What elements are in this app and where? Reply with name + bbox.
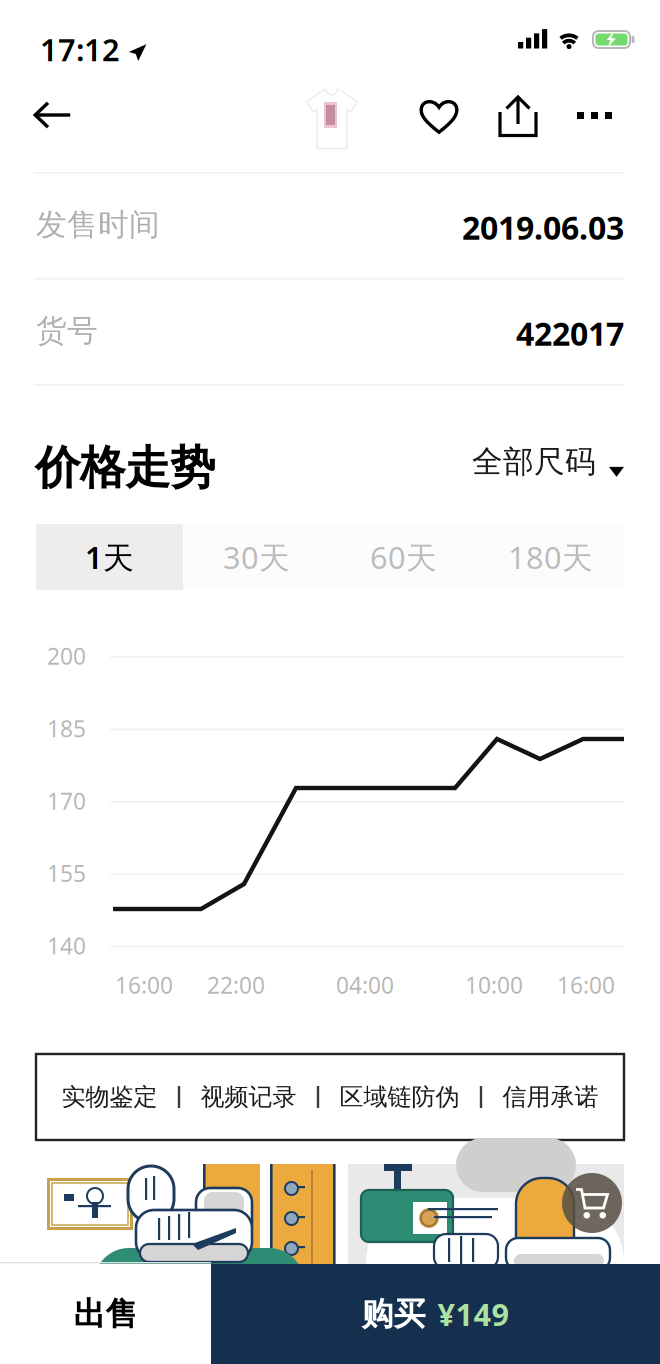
staticText: ¥149 (437, 1294, 509, 1334)
staticText: 16:00 (557, 970, 615, 1000)
staticText: 10:00 (465, 970, 523, 1000)
staticText: 16:00 (115, 970, 173, 1000)
staticText: 22:00 (207, 970, 265, 1000)
button[interactable]: 全部尺码 (472, 443, 624, 481)
button[interactable]: 购买 (211, 1264, 660, 1364)
staticText: 视频记录 (200, 1082, 296, 1112)
staticText: 1天 (85, 537, 134, 577)
staticText: 价格走势 (35, 440, 215, 496)
staticText: 60天 (370, 537, 437, 577)
staticText: 17:12 (40, 29, 120, 70)
button[interactable]: Share (498, 95, 538, 137)
button[interactable]: Shopping cart (562, 1173, 622, 1233)
staticText: 180天 (508, 537, 593, 577)
staticText: 200 (47, 641, 86, 671)
button[interactable]: Back (33, 101, 72, 129)
staticText: 全部尺码 (472, 443, 596, 481)
button[interactable]: 1天 (36, 524, 183, 590)
button[interactable]: 30天 (183, 524, 330, 590)
staticText: 信用承诺 (502, 1082, 598, 1112)
staticText: 422017 (516, 312, 624, 354)
button[interactable]: 180天 (477, 524, 624, 590)
staticText: 区域链防伪 (339, 1082, 459, 1112)
staticText: 货号 (36, 312, 98, 350)
staticText: 实物鉴定 (61, 1082, 157, 1112)
staticText: 185 (47, 713, 86, 743)
button[interactable]: Favorite (419, 97, 459, 134)
staticText: 30天 (223, 537, 290, 577)
staticText: 155 (47, 858, 86, 888)
button[interactable]: 60天 (330, 524, 477, 590)
button[interactable]: More options (577, 112, 612, 119)
staticText: 购买 (361, 1294, 425, 1334)
staticText: 04:00 (336, 970, 394, 1000)
staticText: 出售 (73, 1294, 137, 1334)
staticText: 发售时间 (36, 206, 160, 244)
staticText: 2019.06.03 (462, 206, 624, 248)
staticText: 170 (47, 786, 86, 816)
staticText: 140 (47, 931, 86, 961)
button[interactable]: 出售 (0, 1264, 211, 1364)
